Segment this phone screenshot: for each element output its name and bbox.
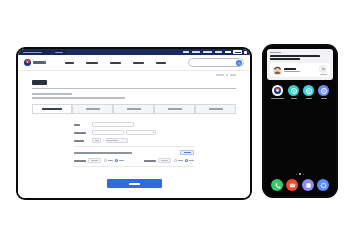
button[interactable] — [80, 59, 104, 67]
button[interactable] — [106, 138, 128, 143]
button[interactable] — [59, 59, 80, 67]
button[interactable]: Open — [319, 65, 327, 73]
button[interactable]: Messages — [286, 179, 298, 191]
button[interactable] — [185, 159, 194, 162]
button[interactable]: App — [271, 85, 284, 99]
button[interactable] — [104, 159, 113, 162]
button[interactable] — [92, 138, 101, 143]
button[interactable]: Settings — [317, 179, 329, 191]
button[interactable]: Open — [267, 49, 333, 80]
button[interactable]: Store — [302, 179, 314, 191]
button[interactable] — [158, 158, 171, 163]
button[interactable]: Phone — [271, 179, 283, 191]
button[interactable] — [115, 159, 124, 162]
button[interactable] — [127, 59, 150, 67]
button[interactable] — [21, 50, 51, 55]
button[interactable] — [180, 150, 194, 155]
button[interactable]: Search — [188, 58, 244, 67]
button[interactable]: Open — [270, 63, 330, 77]
button[interactable] — [92, 122, 134, 127]
button[interactable] — [24, 59, 46, 66]
button[interactable] — [88, 158, 101, 163]
button[interactable] — [174, 159, 183, 162]
button[interactable]: App — [288, 85, 299, 99]
button[interactable] — [154, 104, 195, 114]
button[interactable] — [195, 104, 236, 114]
button[interactable] — [150, 59, 172, 67]
button[interactable] — [126, 130, 156, 135]
button[interactable]: App — [303, 85, 314, 99]
button[interactable] — [113, 104, 154, 114]
button[interactable] — [104, 59, 127, 67]
button[interactable] — [32, 104, 72, 114]
button[interactable] — [72, 104, 113, 114]
button[interactable] — [92, 130, 124, 135]
button[interactable] — [53, 50, 67, 55]
button[interactable]: App — [318, 85, 329, 99]
button[interactable] — [107, 179, 162, 188]
